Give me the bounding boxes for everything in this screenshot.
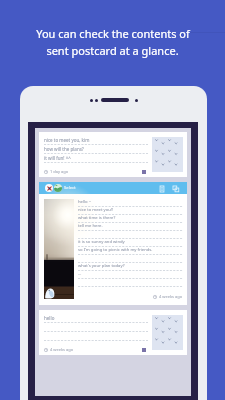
staticText: Select [64, 185, 76, 191]
staticText: so I'm going to picnic with my friends. [78, 247, 153, 253]
staticText: nice to meet you!! [78, 207, 114, 213]
staticText: hello [44, 315, 55, 321]
button[interactable]: Copy [172, 185, 179, 192]
staticText: it is so sunny and windy [78, 239, 125, 245]
staticText: 4 weeks ago [159, 294, 183, 299]
staticText: it will fun! ^^ [44, 155, 71, 161]
staticText: what's your plan today? [78, 263, 125, 269]
button[interactable]: hello [39, 310, 187, 355]
button[interactable]: Close [39, 182, 187, 194]
staticText: sent postcard at a glance. [46, 43, 179, 58]
staticText: 1 day ago [50, 169, 69, 174]
staticText: nice to meet you, kim [44, 137, 90, 143]
staticText: tell me here. [78, 223, 103, 229]
staticText: hello ~ [78, 199, 92, 205]
staticText: You can check the contents of [36, 26, 190, 41]
other: Globe [54, 184, 62, 192]
staticText: 4 weeks ago [50, 347, 74, 352]
staticText: how will the plans? [44, 146, 84, 152]
staticText: ... [78, 271, 82, 277]
other: Close [45, 184, 53, 192]
button[interactable]: Note [158, 185, 165, 192]
button[interactable]: hello ~ [39, 194, 187, 305]
button[interactable]: nice to meet you, kim [39, 132, 187, 177]
staticText: what time is there? [78, 215, 116, 221]
